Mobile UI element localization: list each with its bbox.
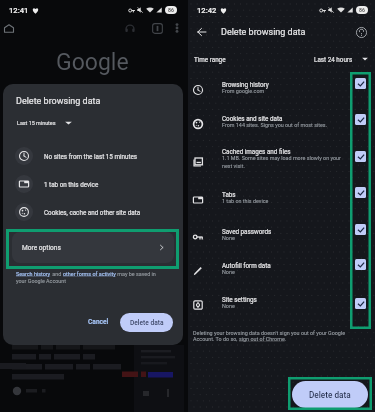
staticText: and xyxy=(51,271,63,277)
button[interactable]: Select Site settings xyxy=(355,298,366,309)
staticText: 12:42 xyxy=(197,6,217,15)
button[interactable]: Select Browsing history xyxy=(355,78,366,89)
button[interactable]: Back xyxy=(192,22,212,42)
button[interactable]: More options xyxy=(12,232,174,263)
staticText: . xyxy=(285,336,287,342)
staticText: Cancel xyxy=(88,318,109,326)
staticText: Search history xyxy=(16,271,51,277)
staticText: Delete browsing data xyxy=(16,96,101,107)
button[interactable]: Last 15 minutes xyxy=(15,118,74,128)
button[interactable] xyxy=(188,186,375,208)
button[interactable] xyxy=(188,291,375,313)
staticText: More options xyxy=(22,244,61,252)
button[interactable]: Select Cached images and files xyxy=(355,151,366,162)
button[interactable]: Cookies, cache and other site data xyxy=(3,198,183,226)
button[interactable]: Select Tabs xyxy=(355,187,366,198)
staticText: Autofill form data xyxy=(222,262,271,269)
staticText: may be saved in xyxy=(116,271,156,277)
button[interactable]: Time range xyxy=(188,49,375,69)
staticText: 1 tab on this device xyxy=(44,181,99,188)
button[interactable]: No sites from the last 15 minutes xyxy=(3,142,183,170)
staticText: None xyxy=(222,303,235,309)
staticText: Tabs xyxy=(222,191,236,198)
staticText: Delete data xyxy=(309,390,351,400)
button[interactable]: Home xyxy=(1,20,17,36)
staticText: Saved passwords xyxy=(222,228,272,235)
button[interactable]: More options xyxy=(169,20,185,36)
button[interactable] xyxy=(188,76,375,98)
button[interactable] xyxy=(188,143,375,173)
button[interactable]: Cancel xyxy=(79,312,118,332)
button[interactable]: Listen to this page xyxy=(122,20,138,36)
staticText: From 144 sites. Signs you out of most si… xyxy=(222,122,328,128)
staticText: Cached images and files xyxy=(222,148,291,155)
staticText: sign out of Chrome xyxy=(239,336,285,342)
button[interactable] xyxy=(188,223,375,245)
button[interactable]: Select Cookies and site data xyxy=(355,114,366,125)
staticText: 1 tab on this device xyxy=(222,198,269,204)
button[interactable]: Select Autofill form data xyxy=(355,259,366,270)
button[interactable] xyxy=(188,257,375,279)
staticText: None xyxy=(222,269,235,275)
staticText: Site settings xyxy=(222,296,257,303)
staticText: No sites from the last 15 minutes xyxy=(44,153,138,160)
staticText: Google xyxy=(56,49,129,76)
staticText: Delete browsing data xyxy=(221,27,306,38)
staticText: None xyxy=(222,235,235,241)
staticText: 12:41 xyxy=(9,6,29,15)
button[interactable] xyxy=(188,110,375,140)
staticText: Cookies and site data xyxy=(222,115,283,122)
staticText: From google.com xyxy=(222,88,265,94)
staticText: Account. To do so, xyxy=(193,336,239,342)
staticText: Browsing history xyxy=(222,81,269,88)
staticText: your Google Account xyxy=(16,278,67,284)
button[interactable]: Switch tabs xyxy=(149,20,166,37)
staticText: Deleting your browsing data doesn't sign… xyxy=(193,330,346,336)
staticText: Time range xyxy=(194,56,226,63)
staticText: 86 xyxy=(359,7,365,13)
staticText: other forms of activity xyxy=(63,271,116,277)
staticText: Last 15 minutes xyxy=(17,120,56,126)
button[interactable]: Select Saved passwords xyxy=(355,224,366,235)
button[interactable]: 1 tab on this device xyxy=(3,170,183,198)
button[interactable]: Help xyxy=(351,22,371,42)
staticText: 1.1 MB. Some sites may load more slowly … xyxy=(222,155,352,169)
staticText: Delete data xyxy=(130,319,164,327)
staticText: 86 xyxy=(168,7,174,13)
button[interactable]: Delete data xyxy=(292,381,368,408)
button[interactable]: Delete data xyxy=(120,313,173,332)
staticText: Cookies, cache and other site data xyxy=(44,209,141,216)
staticText: Last 24 hours xyxy=(314,56,353,63)
